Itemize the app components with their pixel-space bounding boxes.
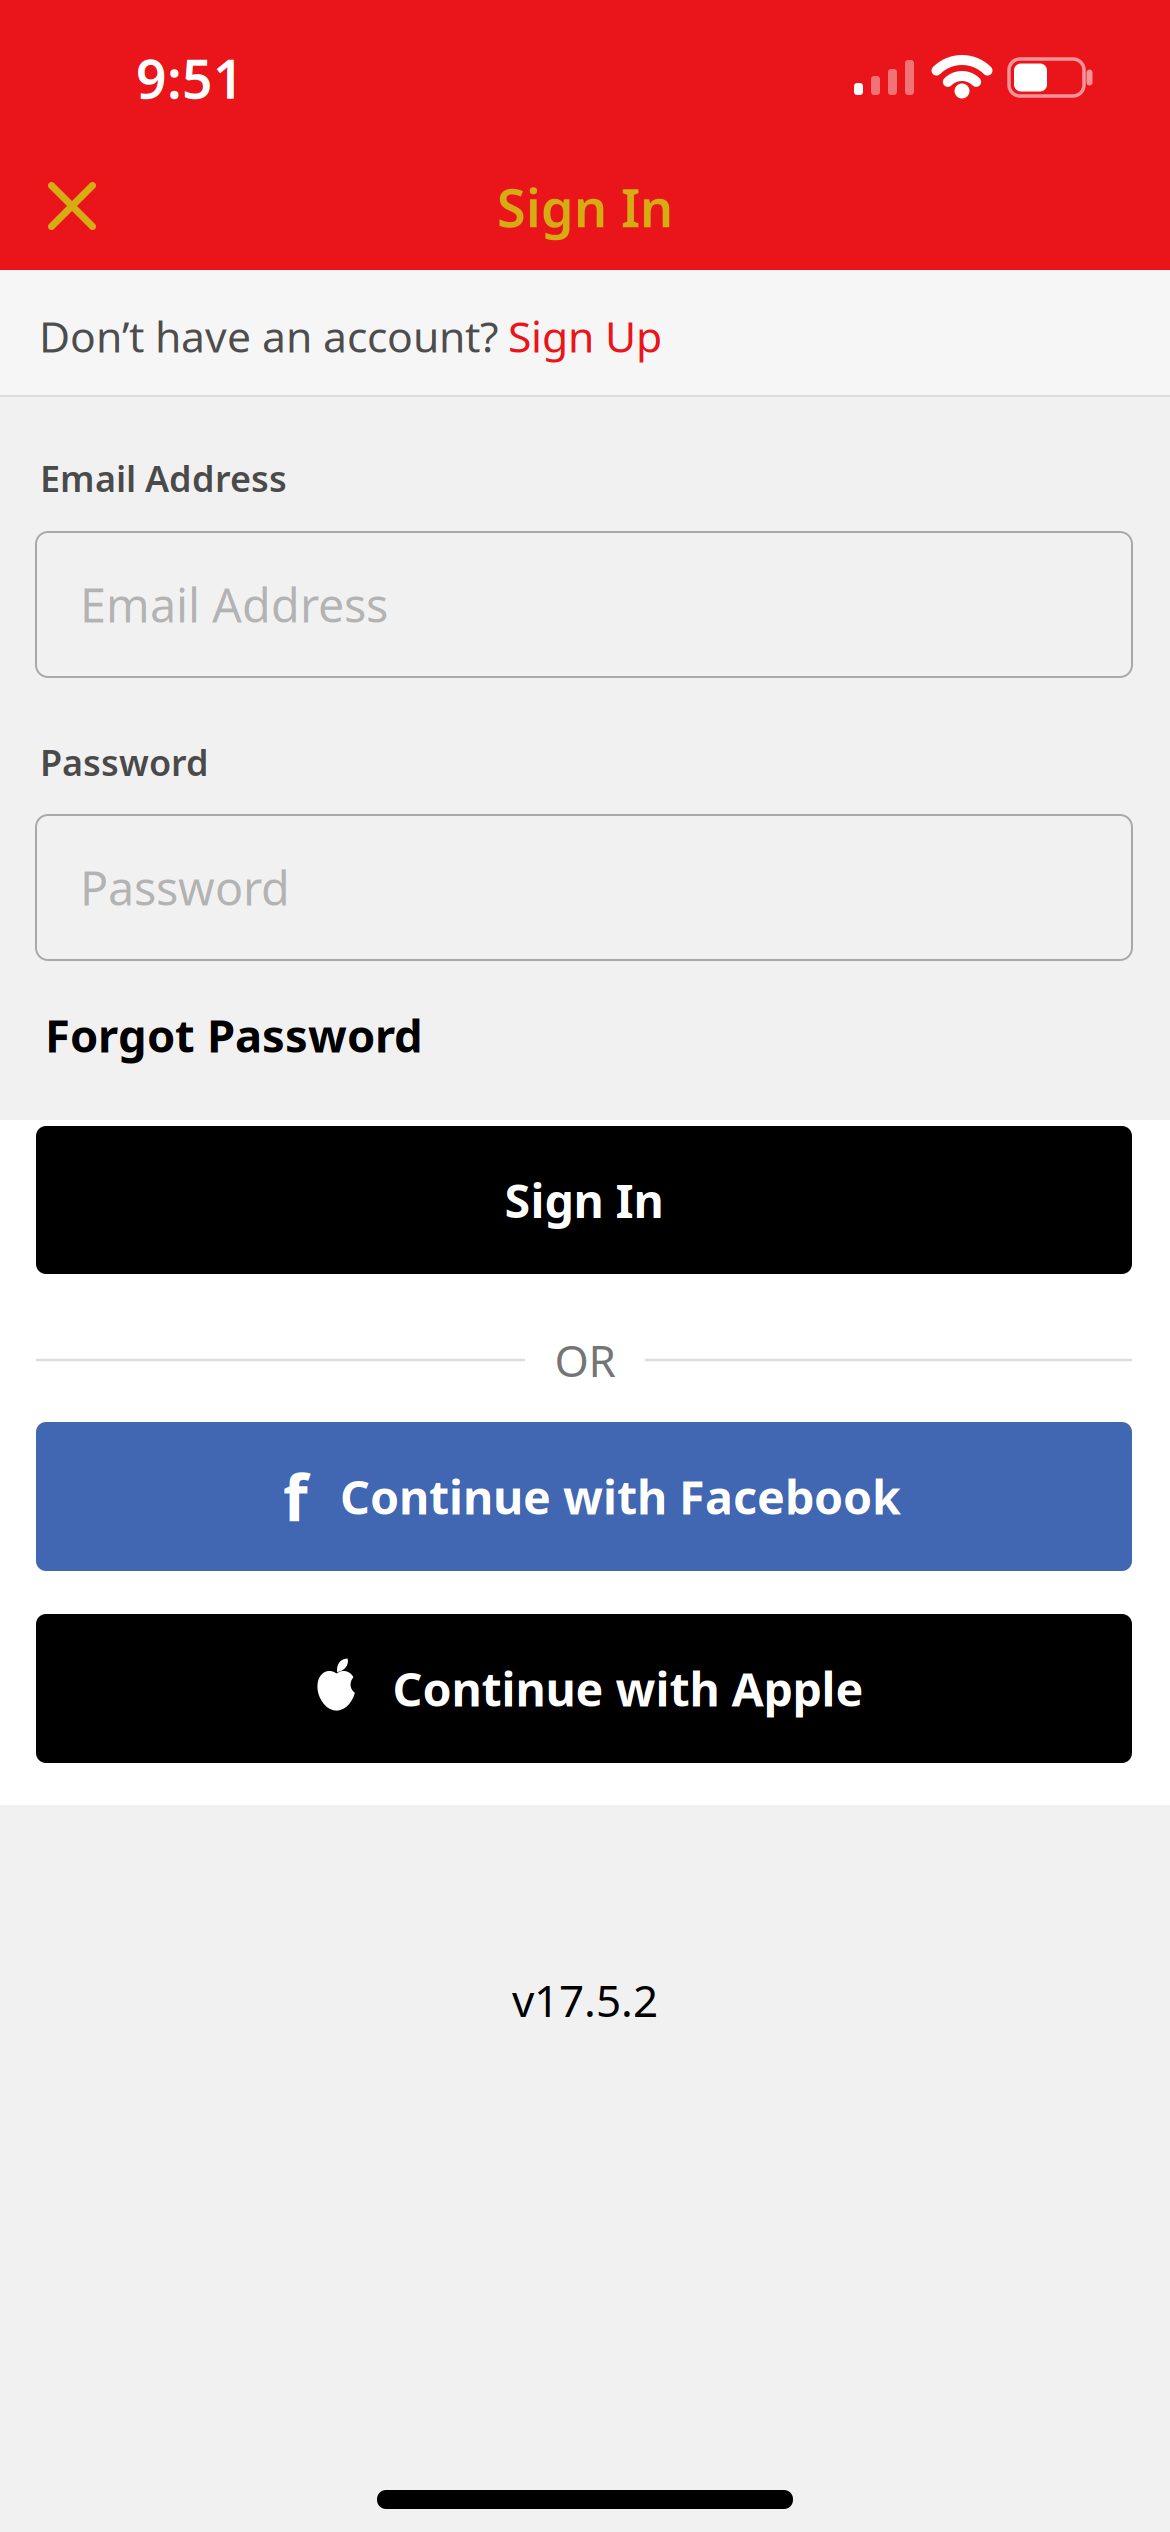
staticText: Continue with Apple xyxy=(392,1657,863,1719)
staticText: Don’t have an account? xyxy=(39,308,499,364)
button[interactable]: Password xyxy=(36,815,1132,960)
staticText: Email Address xyxy=(80,573,388,635)
button[interactable]: Continue with Apple xyxy=(36,1614,1132,1763)
staticText: Continue with Facebook xyxy=(340,1465,901,1527)
staticText: v17.5.2 xyxy=(512,1971,658,2029)
staticText: OR xyxy=(554,1331,615,1389)
staticText: Password xyxy=(80,856,290,918)
button[interactable]: f xyxy=(36,1422,1132,1571)
staticText: Forgot Password xyxy=(45,1005,423,1065)
button[interactable]: Forgot Password xyxy=(45,1005,423,1065)
button[interactable]: Sign Up xyxy=(508,308,662,364)
button[interactable]: Sign In xyxy=(36,1126,1132,1274)
staticText: Sign Up xyxy=(508,308,662,364)
staticText: Email Address xyxy=(40,454,287,502)
staticText: Sign In xyxy=(497,172,673,242)
button[interactable]: Close xyxy=(36,170,108,242)
staticText: Sign In xyxy=(504,1169,663,1231)
staticText: Password xyxy=(40,738,209,786)
button[interactable]: Email Address xyxy=(36,532,1132,677)
staticText: 9:51 xyxy=(136,43,244,113)
staticText: f xyxy=(283,1454,308,1539)
